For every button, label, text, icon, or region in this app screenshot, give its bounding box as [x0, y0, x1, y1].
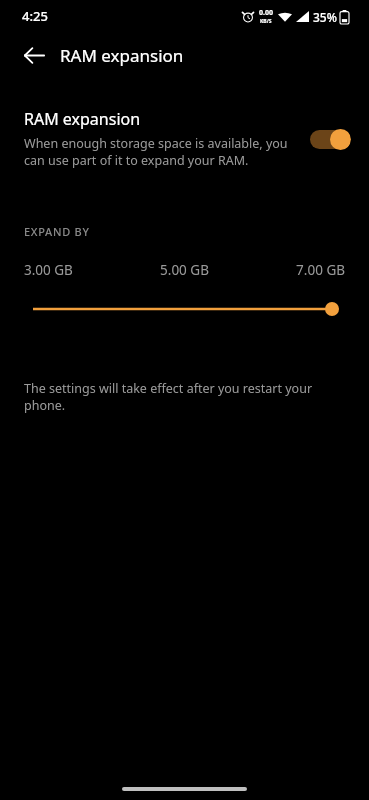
- button[interactable]: RAM expansion toggle, on: [307, 126, 351, 152]
- staticText: 5.00 GB: [131, 261, 238, 279]
- button[interactable]: Back: [12, 33, 56, 77]
- staticText: 7.00 GB: [238, 261, 345, 279]
- staticText: The settings will take effect after you …: [24, 380, 349, 414]
- staticText: 35%: [313, 9, 337, 25]
- staticText: RAM expansion: [24, 108, 141, 130]
- button[interactable]: RAM expansion: [0, 108, 369, 169]
- staticText: EXPAND BY: [24, 224, 90, 239]
- staticText: 3.00 GB: [24, 261, 131, 279]
- button[interactable]: Expand by slider, 7.00 GB: [0, 296, 369, 322]
- staticText: When enough storage space is available, …: [24, 135, 294, 169]
- staticText: 0.00: [259, 8, 273, 18]
- staticText: KB/S: [260, 18, 272, 25]
- staticText: RAM expansion: [60, 44, 184, 67]
- staticText: 4:25: [22, 7, 48, 25]
